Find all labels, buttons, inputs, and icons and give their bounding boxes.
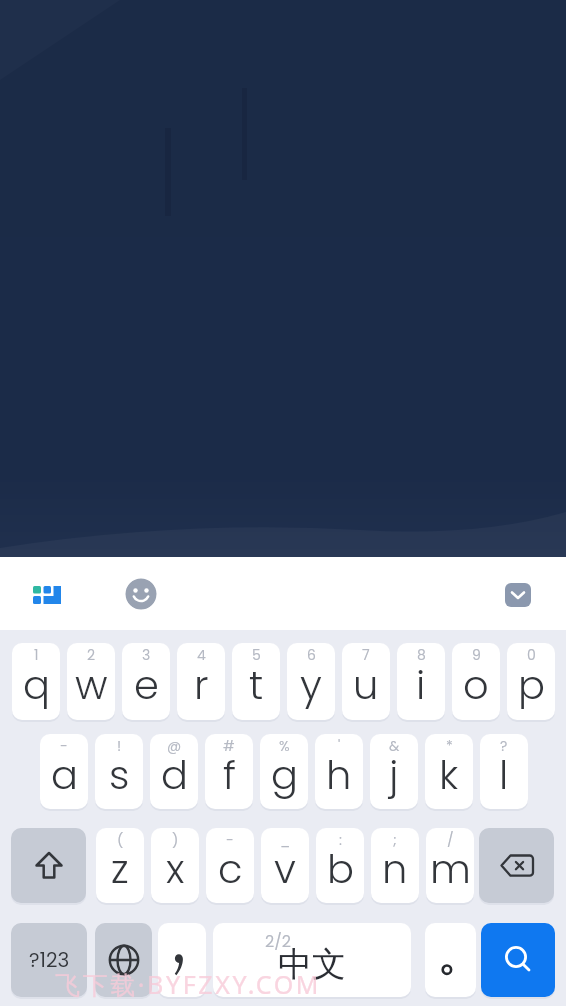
staticText: r [194,657,209,713]
button[interactable]: g [260,734,308,809]
staticText: ( [117,830,124,850]
staticText: ' [338,736,341,756]
staticText: s [109,747,130,803]
staticText: 8 [417,645,426,665]
staticText: k [439,747,459,803]
staticText: p [518,657,545,713]
staticText: ) [172,830,179,850]
button[interactable]: a [40,734,88,809]
button[interactable] [505,583,531,607]
button[interactable]: u [342,643,390,720]
staticText: g [271,747,298,803]
staticText: / [447,830,454,850]
staticText: 2 [87,645,96,665]
staticText: : [339,830,342,850]
staticText: c [218,841,243,897]
staticText: v [274,841,296,897]
button[interactable]: c [206,828,254,903]
button[interactable]: m [426,828,474,903]
button[interactable] [479,828,554,903]
button[interactable]: t [232,643,280,720]
button[interactable]: b [316,828,364,903]
button[interactable] [481,923,555,997]
button[interactable]: r [177,643,225,720]
button[interactable] [28,579,66,607]
staticText: - [60,736,68,756]
staticText: 5 [252,645,261,665]
staticText: t [249,657,264,713]
button[interactable]: d [150,734,198,809]
button[interactable]: k [425,734,473,809]
button[interactable]: l [480,734,528,809]
staticText: q [23,657,50,713]
button[interactable]: j [370,734,418,809]
staticText: z [111,841,129,897]
staticText: w [75,657,108,713]
staticText: ! [117,736,122,756]
staticText: 中文 [278,943,346,986]
staticText: ? [500,736,508,756]
staticText: % [279,736,290,756]
staticText: x [166,841,185,897]
staticText: d [161,747,188,803]
staticText: 飞下载·BYFZXY.COM [55,967,322,1001]
staticText: 7 [362,645,370,665]
button[interactable]: y [287,643,335,720]
staticText: a [51,747,78,803]
button[interactable]: f [205,734,253,809]
staticText: o [463,657,489,713]
staticText: 4 [197,645,206,665]
staticText: @ [167,736,182,756]
button[interactable]: v [261,828,309,903]
button[interactable] [125,578,157,610]
staticText: l [499,747,509,803]
button[interactable]: h [315,734,363,809]
staticText: f [223,747,236,803]
staticText: j [389,747,399,803]
staticText: h [326,747,352,803]
button[interactable]: q [12,643,60,720]
button[interactable]: ?123 [11,923,87,997]
staticText: e [134,657,159,713]
button[interactable]: p [507,643,555,720]
staticText: y [300,657,322,713]
button[interactable]: 中文 [213,923,411,997]
staticText: 2/2 [265,930,292,952]
button[interactable]: n [371,828,419,903]
staticText: 6 [307,645,316,665]
button[interactable]: x [151,828,199,903]
button[interactable] [158,923,206,997]
staticText: ?123 [29,946,70,974]
staticText: 3 [142,645,151,665]
staticText: i [416,657,426,713]
staticText: * [446,736,453,756]
button[interactable]: s [95,734,143,809]
staticText: 9 [472,645,481,665]
staticText: # [223,736,235,756]
button[interactable]: w [67,643,115,720]
staticText: b [327,841,354,897]
staticText: n [382,841,408,897]
button[interactable]: i [397,643,445,720]
staticText: ; [393,830,397,850]
staticText: m [430,841,471,897]
button[interactable] [95,923,152,997]
staticText: _ [280,830,291,850]
button[interactable] [11,828,86,903]
staticText: & [389,736,400,756]
button[interactable]: o [452,643,500,720]
staticText: u [353,657,379,713]
button[interactable] [425,923,476,997]
staticText: - [226,830,234,850]
staticText: 1 [34,645,39,665]
staticText: 0 [527,645,536,665]
button[interactable]: e [122,643,170,720]
button[interactable]: z [96,828,144,903]
